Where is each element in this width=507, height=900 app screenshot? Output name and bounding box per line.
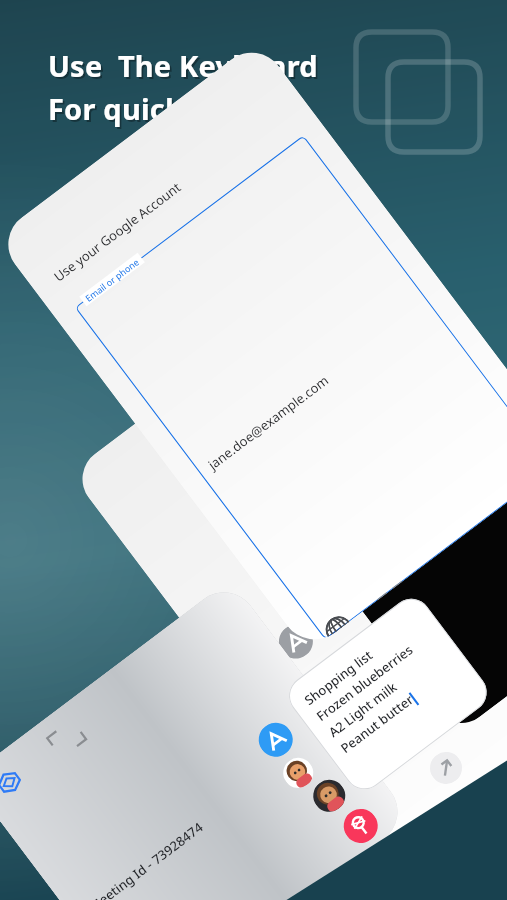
button[interactable]: jane.doe@example.com <box>75 135 507 640</box>
button[interactable]: AA <box>0 39 507 653</box>
staticText: Frozen blueberries <box>313 640 417 725</box>
staticText: Email or phone <box>82 255 142 304</box>
button[interactable]: App <box>272 618 320 665</box>
staticText: Use The Keyboard <box>48 46 318 85</box>
staticText: Peanut butter <box>337 690 417 757</box>
staticText: Use The Keyboard <box>50 48 320 87</box>
staticText: Use your Google Account <box>50 178 185 285</box>
button[interactable]: Memoji <box>277 752 319 794</box>
staticText: A2 Light milk <box>325 678 400 741</box>
button[interactable]: Memoji <box>307 773 352 818</box>
button[interactable]: Digital Touch <box>337 802 384 850</box>
button[interactable]: Camera <box>70 292 507 900</box>
staticText: For quick access <box>50 91 288 130</box>
button[interactable]: 8:24 <box>197 235 507 735</box>
staticText: Meeting Id - 73928474 <box>85 818 207 900</box>
staticText: jane.doe@example.com <box>204 371 332 473</box>
button[interactable]: Camera <box>217 607 259 649</box>
button[interactable]: Clipboard <box>0 579 411 900</box>
button[interactable]: Meeting Id - 73928474 <box>2 625 411 900</box>
button[interactable]: Music <box>369 831 416 878</box>
button[interactable]: Clipboard <box>0 764 27 800</box>
button[interactable]: App <box>237 644 284 692</box>
staticText: Shopping list <box>301 646 376 709</box>
button[interactable]: App Store <box>252 716 299 763</box>
staticText: For quick access <box>48 89 286 128</box>
button[interactable]: Shopping list <box>281 591 495 797</box>
button[interactable]: Send <box>424 745 468 790</box>
